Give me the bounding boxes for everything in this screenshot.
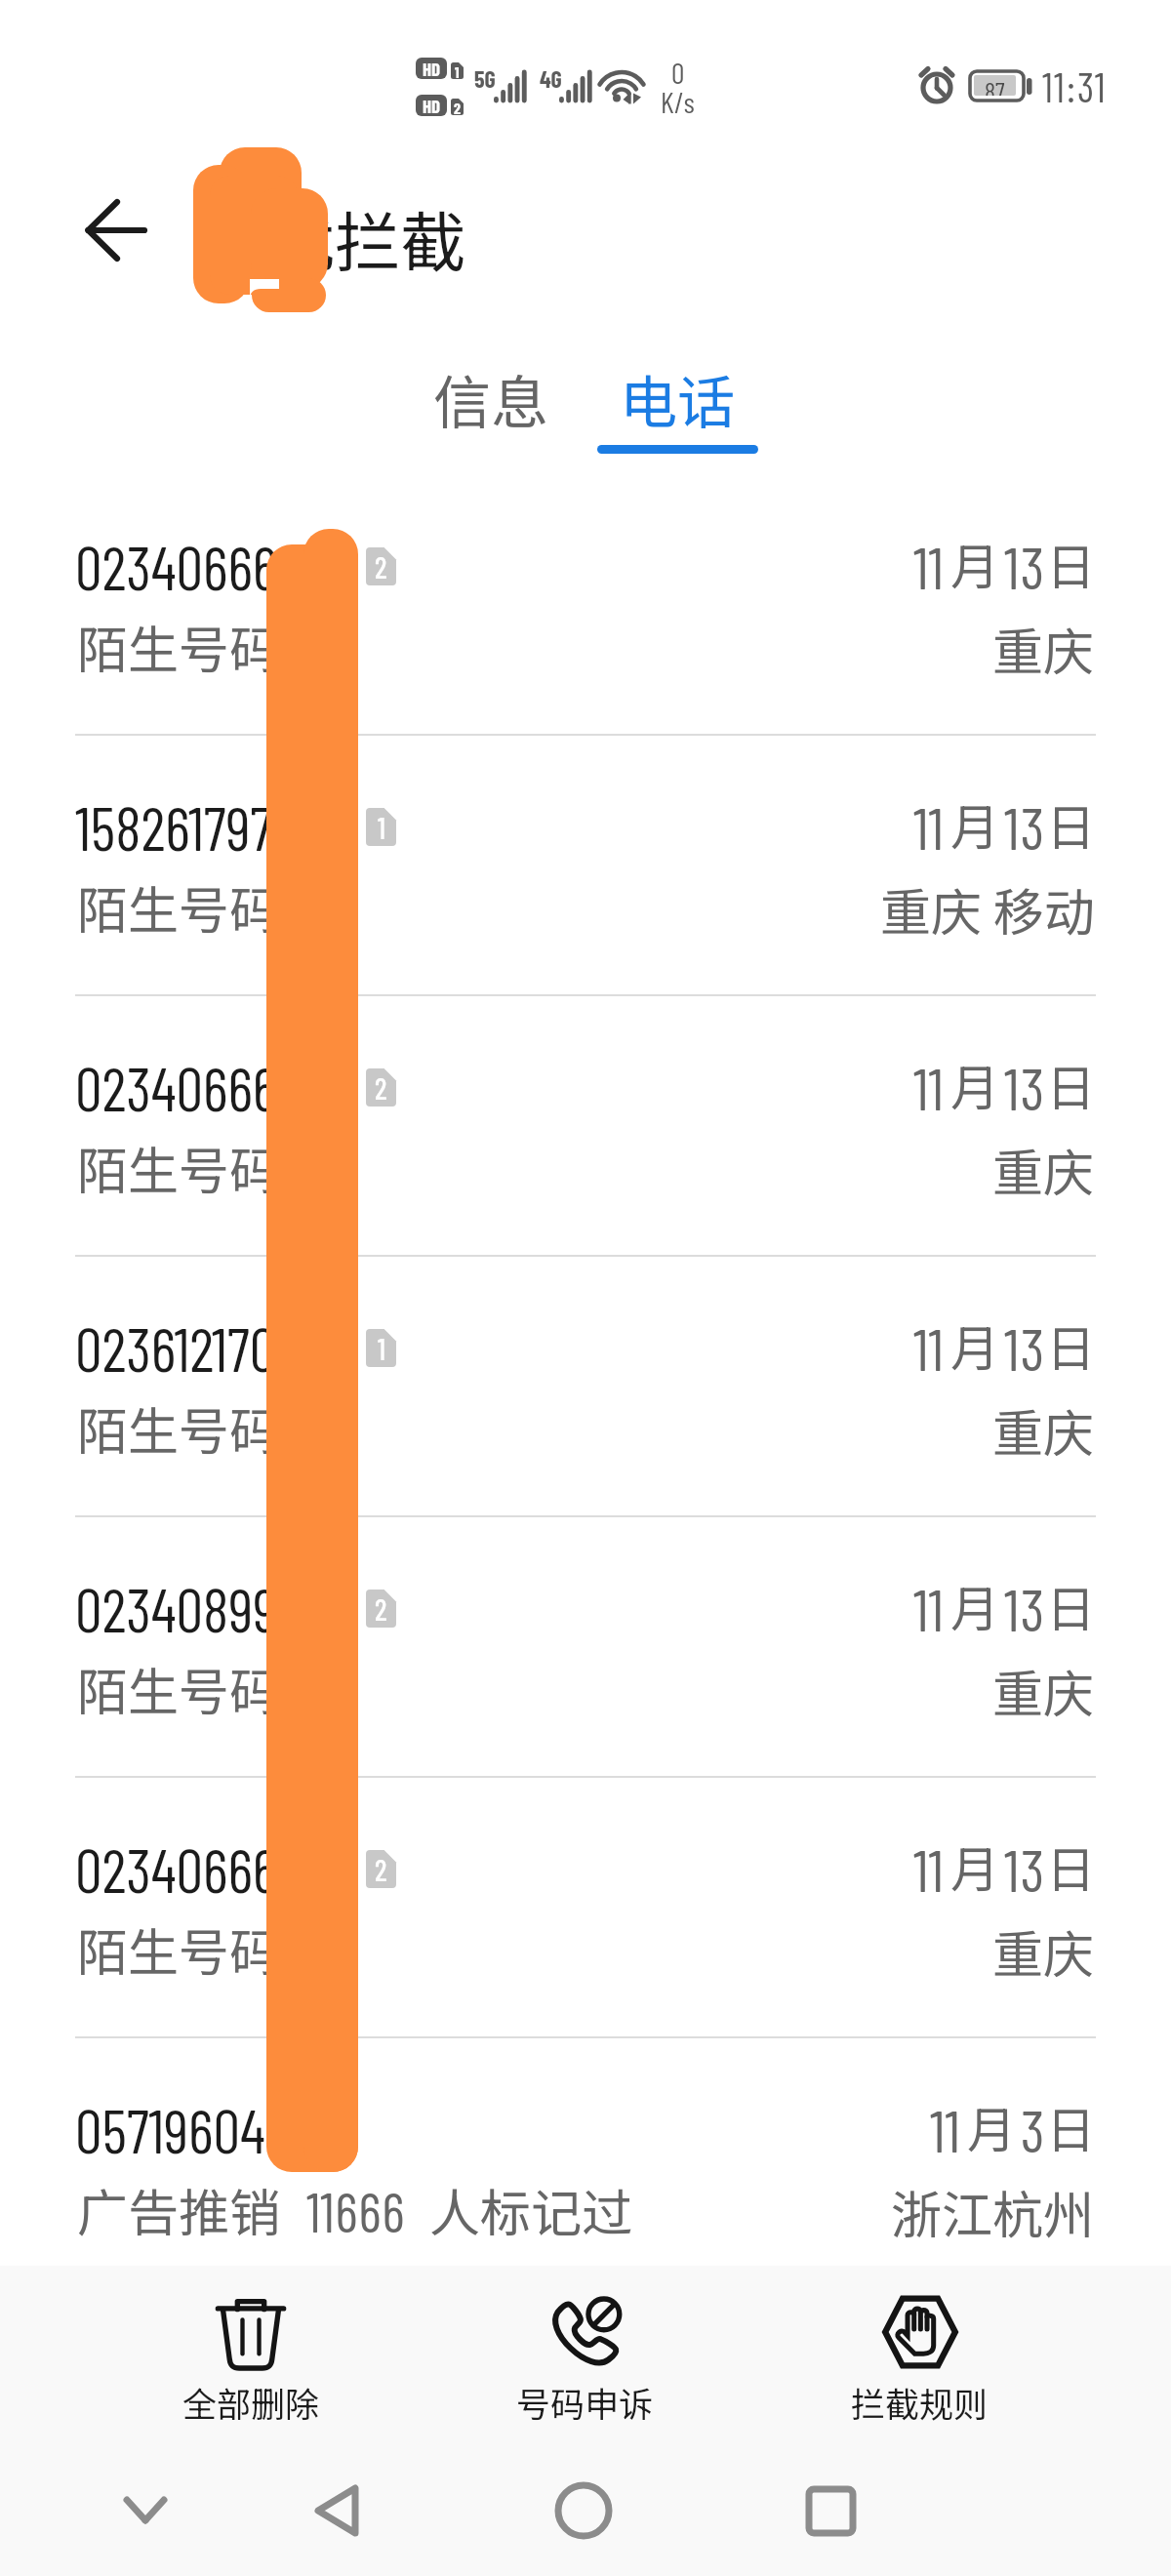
staticText: 陌生号码 xyxy=(77,870,281,944)
staticText: 13 xyxy=(1004,1312,1046,1383)
staticText: 1 xyxy=(378,810,385,845)
staticText: 11 xyxy=(913,1833,946,1904)
button[interactable]: 全部删除 xyxy=(84,2266,418,2432)
staticText: 4G xyxy=(540,64,562,88)
button[interactable]: 057196043 xyxy=(0,2036,1171,2266)
staticText: 陌生号码 xyxy=(77,610,281,683)
staticText: 全部删除 xyxy=(182,2377,320,2427)
staticText: 11 xyxy=(913,1573,946,1643)
staticText: 月 xyxy=(950,1570,999,1640)
staticText: 87 xyxy=(985,75,1005,96)
staticText: 陌生号码 xyxy=(77,1912,281,1986)
staticText: 11:31 xyxy=(1042,61,1108,110)
staticText: 02340666 xyxy=(75,1051,278,1123)
staticText: 浙江杭州 xyxy=(891,2175,1095,2248)
staticText: 11 xyxy=(913,531,946,601)
staticText: 月 xyxy=(950,1049,999,1119)
staticText: 11666 xyxy=(306,2178,406,2243)
staticText: 02340666 xyxy=(75,530,278,602)
staticText: 日 xyxy=(1046,1570,1095,1640)
button[interactable]: 信息 xyxy=(384,332,598,473)
staticText: 0 xyxy=(671,55,685,90)
button[interactable]: 02340666 xyxy=(0,1776,1171,2036)
button[interactable]: 158261797 xyxy=(0,734,1171,994)
staticText: 日 xyxy=(1046,1049,1095,1119)
staticText: 057196043 xyxy=(75,2093,290,2165)
staticText: 日 xyxy=(1046,1831,1095,1901)
staticText: 1 xyxy=(378,1331,385,1366)
button[interactable]: 电话 xyxy=(570,332,785,473)
staticText: 广告推销 xyxy=(77,2173,281,2246)
staticText: 13 xyxy=(1004,531,1046,601)
staticText: 人标记过 xyxy=(429,2173,633,2246)
staticText: 日 xyxy=(1046,2091,1095,2161)
staticText: 号码申诉 xyxy=(516,2377,654,2427)
staticText: 2 xyxy=(375,1070,387,1106)
button[interactable]: 023612170 xyxy=(0,1255,1171,1515)
staticText: 11 xyxy=(913,791,946,862)
staticText: 2 xyxy=(375,1591,387,1627)
staticText: 11 xyxy=(913,1052,946,1122)
staticText: 电话 xyxy=(620,357,736,440)
staticText: 1 xyxy=(455,62,460,79)
staticText: 日 xyxy=(1046,788,1095,859)
staticText: 13 xyxy=(1004,1052,1046,1122)
staticText: 信息 xyxy=(433,357,549,440)
staticText: 2 xyxy=(375,549,387,584)
staticText: 陌生号码 xyxy=(77,1131,281,1204)
staticText: 3 xyxy=(1021,2094,1046,2164)
staticText: 13 xyxy=(1004,1833,1046,1904)
staticText: 5G xyxy=(474,64,496,88)
button[interactable]: Back xyxy=(61,146,171,256)
staticText: 日 xyxy=(1046,528,1095,598)
staticText: HD xyxy=(423,58,441,79)
staticText: 重庆 xyxy=(992,1914,1095,1988)
staticText: 月 xyxy=(950,1309,999,1380)
staticText: 重庆 xyxy=(992,1654,1095,1727)
staticText: 重庆 xyxy=(992,612,1095,685)
staticText: 158261797 xyxy=(75,790,273,863)
button[interactable]: 02340899 xyxy=(0,1515,1171,1776)
staticText: 02340899 xyxy=(75,1572,278,1644)
staticText: 陌生号码 xyxy=(77,1391,281,1465)
staticText: 02340666 xyxy=(75,1832,278,1905)
staticText: 月 xyxy=(950,528,999,598)
staticText: 11 xyxy=(913,1312,946,1383)
button[interactable]: 02340666 xyxy=(0,473,1171,734)
staticText: K/s xyxy=(661,84,695,119)
staticText: 重庆 移动 xyxy=(880,872,1095,946)
staticText: 月 xyxy=(967,2091,1016,2161)
staticText: 重庆 xyxy=(992,1393,1095,1467)
staticText: 023612170 xyxy=(75,1311,277,1384)
staticText: 2 xyxy=(375,1852,387,1887)
staticText: 月 xyxy=(950,788,999,859)
staticText: 13 xyxy=(1004,1573,1046,1643)
staticText: 日 xyxy=(1046,1309,1095,1380)
staticText: 拦截规则 xyxy=(851,2377,989,2427)
staticText: HD xyxy=(423,95,441,116)
staticText: 月 xyxy=(950,1831,999,1901)
staticText: 13 xyxy=(1004,791,1046,862)
button[interactable]: 02340666 xyxy=(0,994,1171,1255)
button[interactable]: 拦截规则 xyxy=(752,2266,1087,2432)
staticText: 11 xyxy=(930,2094,962,2164)
staticText: 重庆 xyxy=(992,1133,1095,1206)
button[interactable]: 号码申诉 xyxy=(418,2266,752,2432)
staticText: 2 xyxy=(454,99,462,115)
staticText: 陌生号码 xyxy=(77,1652,281,1725)
staticText: 骚扰拦截 xyxy=(204,190,465,285)
